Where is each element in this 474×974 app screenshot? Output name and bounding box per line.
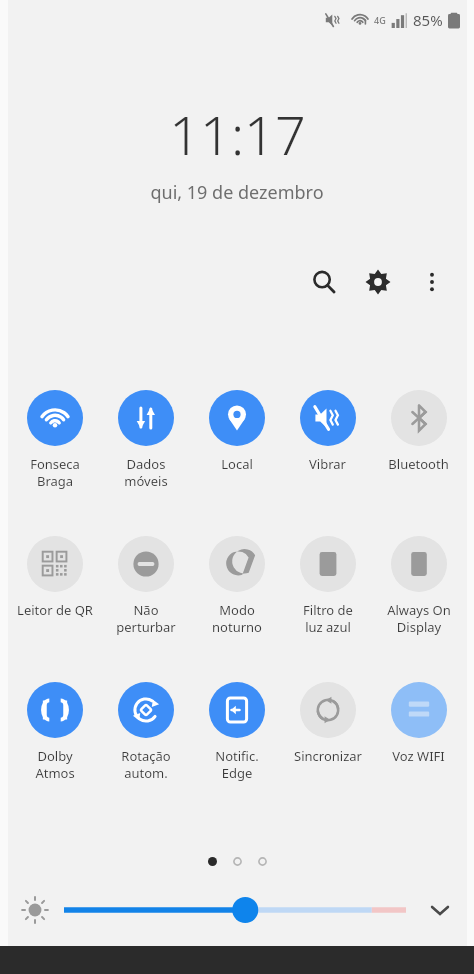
staticText: Notific. Edge (215, 747, 259, 782)
button[interactable]: Local (191, 388, 282, 475)
staticText: qui, 19 de dezembro (150, 180, 324, 205)
staticText: Vibrar (309, 455, 346, 473)
button[interactable]: Dolby Atmos (10, 680, 100, 784)
button[interactable]: Fonseca Braga (10, 388, 100, 492)
button[interactable]: More options (410, 260, 454, 304)
button[interactable]: Rotação autom. (100, 680, 191, 784)
button[interactable]: Expand brightness settings (420, 890, 460, 930)
staticText: 4G (374, 14, 386, 26)
staticText: Local (221, 455, 253, 473)
button[interactable]: Voz WIFI (373, 680, 464, 767)
staticText: Leitor de QR (17, 601, 93, 619)
button[interactable]: Notific. Edge (191, 680, 282, 784)
button[interactable]: Sincronizar (282, 680, 373, 767)
button[interactable]: Filtro de luz azul (282, 534, 373, 638)
button[interactable] (64, 893, 406, 927)
staticText: Rotação autom. (121, 747, 171, 782)
button[interactable]: Dados móveis (100, 388, 191, 492)
staticText: Não perturbar (116, 601, 176, 636)
button[interactable]: Search (302, 260, 346, 304)
staticText: Always On Display (387, 601, 451, 636)
staticText: Bluetooth (388, 455, 449, 473)
button[interactable]: Settings (356, 260, 400, 304)
staticText: Filtro de luz azul (303, 601, 353, 636)
staticText: Dados móveis (124, 455, 168, 490)
staticText: 85% (413, 10, 443, 30)
button[interactable]: Bluetooth (373, 388, 464, 475)
button[interactable]: Não perturbar (100, 534, 191, 638)
button[interactable]: Leitor de QR (10, 534, 100, 621)
staticText: Sincronizar (294, 747, 362, 765)
button[interactable]: Always On Display (373, 534, 464, 638)
button[interactable]: Auto brightness (18, 893, 52, 927)
staticText: Fonseca Braga (30, 455, 80, 490)
button[interactable]: Vibrar (282, 388, 373, 475)
button[interactable]: Modo noturno (191, 534, 282, 638)
staticText: Modo noturno (212, 601, 262, 636)
staticText: 11:17 (169, 97, 306, 171)
staticText: Voz WIFI (392, 747, 445, 765)
staticText: Dolby Atmos (35, 747, 75, 782)
